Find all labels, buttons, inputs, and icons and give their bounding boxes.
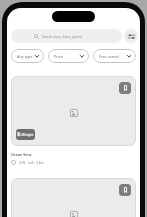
button[interactable]: Price bbox=[48, 49, 89, 63]
button[interactable]: Any type bbox=[11, 49, 44, 63]
button[interactable]: Save to wishlist bbox=[11, 76, 136, 146]
staticText: $ bbox=[17, 131, 20, 138]
staticText: 145/night bbox=[20, 133, 34, 137]
button[interactable]: Filters bbox=[124, 29, 138, 43]
staticText: Ocean View bbox=[11, 152, 32, 157]
staticText: Any type bbox=[17, 54, 33, 59]
staticText: Price bbox=[54, 54, 63, 59]
button[interactable]: Save to wishlist bbox=[119, 184, 131, 196]
button[interactable]: Save to wishlist bbox=[119, 82, 131, 94]
staticText: Free cancel bbox=[99, 54, 119, 59]
button[interactable]: Search stays, dates, guests bbox=[11, 29, 122, 43]
button[interactable]: Save to wishlist bbox=[11, 178, 136, 217]
staticText: Search stays, dates, guests bbox=[42, 35, 83, 39]
staticText: 4.92 · Loft · 2 km bbox=[19, 161, 44, 165]
button[interactable]: Free cancel bbox=[93, 49, 136, 63]
